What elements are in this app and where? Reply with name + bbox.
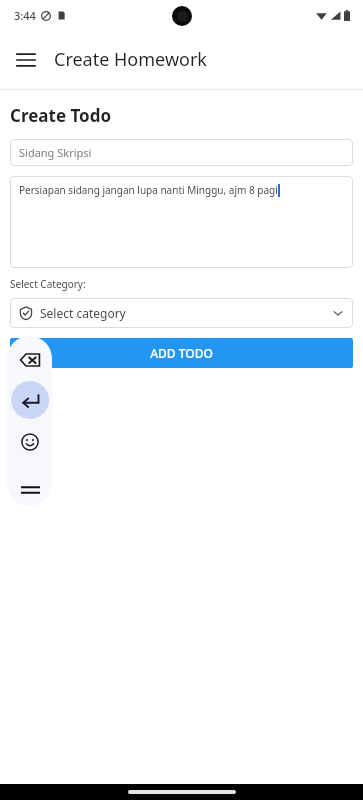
staticText: 3:44 xyxy=(14,8,36,23)
button[interactable]: Select category xyxy=(10,298,353,328)
staticText: Sidang Skripsi xyxy=(19,145,92,160)
button[interactable]: Enter xyxy=(11,381,49,419)
staticText: Create Homework xyxy=(54,47,207,72)
button[interactable]: ADD TODO xyxy=(10,338,353,368)
button[interactable]: Emoji xyxy=(11,423,49,461)
staticText: Select category xyxy=(40,305,126,321)
staticText: ADD TODO xyxy=(150,345,213,361)
staticText: Create Todo xyxy=(10,104,112,127)
button[interactable]: Open navigation menu xyxy=(6,40,46,80)
button[interactable]: More keyboard options xyxy=(11,473,49,506)
button[interactable]: Sidang Skripsi xyxy=(10,139,353,166)
staticText: Persiapan sidang jangan lupa nanti Mingg… xyxy=(19,183,278,197)
button[interactable]: Backspace xyxy=(11,341,49,379)
staticText: Select Category: xyxy=(10,277,86,291)
button[interactable]: Persiapan sidang jangan lupa nanti Mingg… xyxy=(10,176,353,268)
